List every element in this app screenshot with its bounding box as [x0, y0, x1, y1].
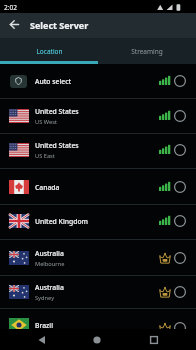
button[interactable]	[32, 331, 52, 349]
staticText: Sydney	[35, 294, 55, 302]
staticText: United States	[35, 107, 79, 116]
staticText: US East	[35, 152, 55, 160]
button[interactable]	[87, 331, 107, 349]
button[interactable]	[6, 16, 23, 33]
button[interactable]	[0, 308, 196, 350]
button[interactable]	[98, 38, 196, 64]
button[interactable]	[0, 204, 196, 240]
staticText: Auto select	[35, 77, 72, 86]
staticText: 2:02	[4, 3, 17, 12]
staticText: Streaming	[131, 47, 163, 56]
button[interactable]	[0, 275, 196, 309]
button[interactable]	[0, 168, 196, 204]
button[interactable]	[0, 64, 196, 98]
button[interactable]	[0, 98, 196, 132]
button[interactable]	[0, 38, 98, 64]
staticText: Canada	[35, 183, 60, 192]
staticText: Melbourne	[35, 260, 65, 268]
staticText: United Kingdom	[35, 217, 89, 226]
staticText: US West	[35, 118, 57, 126]
button[interactable]	[0, 133, 196, 169]
staticText: Select Server	[30, 19, 89, 31]
staticText: Australia	[35, 283, 64, 292]
staticText: Location	[36, 47, 63, 56]
button[interactable]	[144, 331, 164, 349]
staticText: Brazil	[35, 321, 53, 330]
button[interactable]	[0, 239, 196, 275]
staticText: United States	[35, 141, 79, 150]
staticText: Australia	[35, 249, 64, 258]
